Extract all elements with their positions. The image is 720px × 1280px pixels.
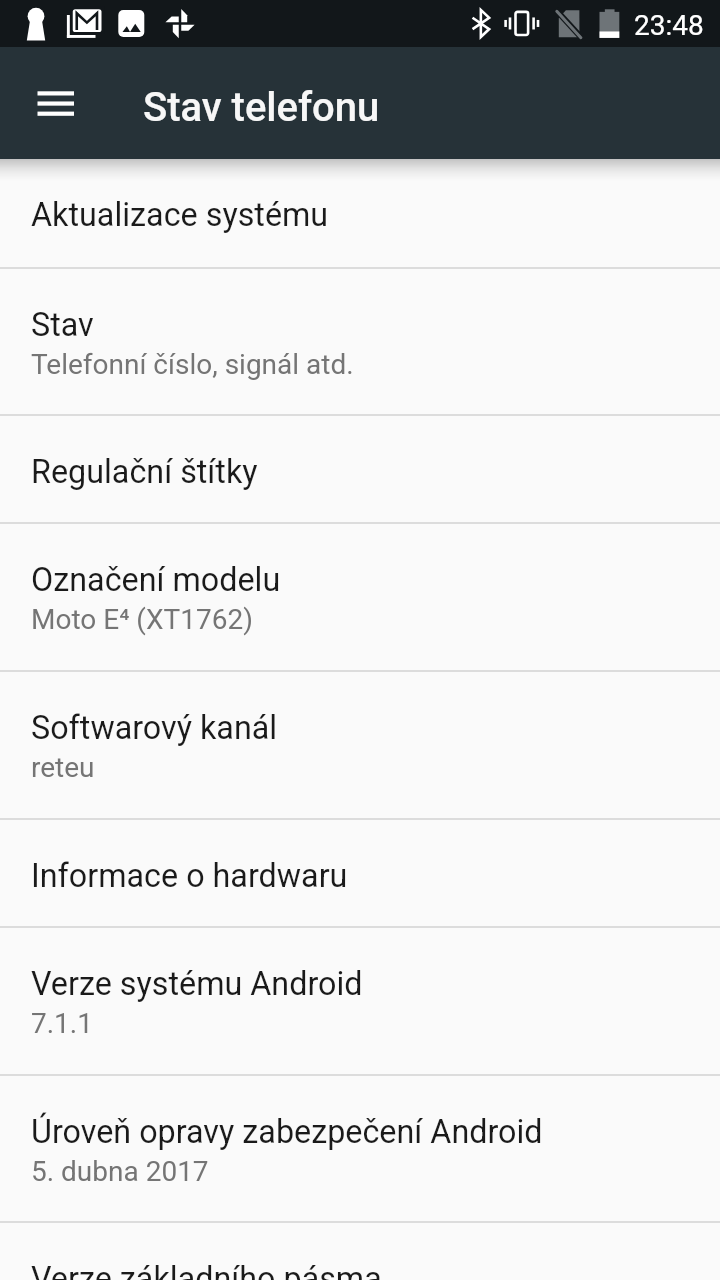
staticText: Stav telefonu	[143, 84, 380, 131]
staticText: Informace o hardwaru	[31, 857, 348, 895]
staticText: Stav	[31, 306, 94, 344]
button[interactable]: Aktualizace systému	[0, 159, 720, 267]
button[interactable]: Informace o hardwaru	[0, 820, 720, 926]
staticText: Úroveň opravy zabezpečení Android	[31, 1113, 543, 1151]
button[interactable]: Označení modelu	[0, 524, 720, 670]
staticText: Telefonní číslo, signál atd.	[31, 348, 354, 381]
button[interactable]: Softwarový kanál	[0, 672, 720, 818]
button[interactable]: Open navigation drawer	[12, 59, 96, 146]
staticText: Softwarový kanál	[31, 709, 278, 747]
staticText: 7.1.1	[31, 1007, 93, 1040]
button[interactable]: Regulační štítky	[0, 416, 720, 522]
staticText: 5. dubna 2017	[31, 1155, 209, 1188]
staticText: Označení modelu	[31, 561, 281, 599]
staticText: Aktualizace systému	[31, 196, 329, 234]
staticText: reteu	[31, 751, 95, 784]
staticText: Regulační štítky	[31, 453, 258, 491]
button[interactable]: Verze systému Android	[0, 928, 720, 1074]
staticText: Verze systému Android	[31, 965, 363, 1003]
staticText: Moto E⁴ (XT1762)	[31, 603, 253, 636]
button[interactable]: Stav	[0, 269, 720, 414]
staticText: 23:48	[634, 9, 704, 42]
staticText: Verze základního pásma	[31, 1260, 382, 1280]
button[interactable]: Úroveň opravy zabezpečení Android	[0, 1076, 720, 1221]
button[interactable]: Verze základního pásma	[0, 1223, 720, 1280]
